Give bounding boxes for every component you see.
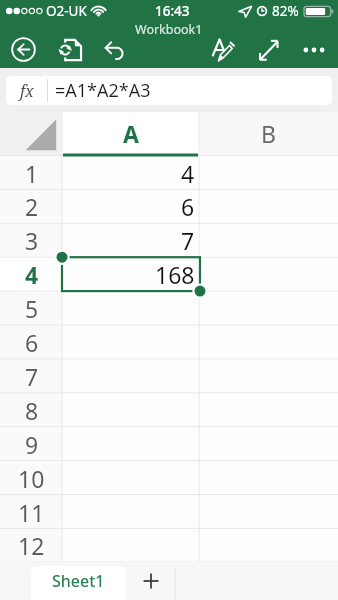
button[interactable]: More options: [290, 31, 338, 68]
staticText: 5: [25, 293, 39, 324]
staticText: 10: [18, 463, 45, 494]
button[interactable]: Sheet1: [31, 566, 126, 600]
staticText: Sheet1: [52, 570, 105, 592]
staticText: =A1*A2*A3: [55, 78, 151, 103]
staticText: 7: [181, 225, 195, 256]
button[interactable]: Undo: [93, 31, 137, 68]
staticText: 11: [18, 497, 45, 528]
staticText: B: [261, 118, 276, 149]
button[interactable]: Format text: [198, 31, 244, 68]
staticText: 8: [25, 395, 39, 426]
staticText: Workbook1: [135, 21, 203, 38]
staticText: 16:43: [155, 2, 190, 20]
button[interactable]: Expand: [244, 31, 290, 68]
button[interactable]: 11: [0, 495, 338, 529]
staticText: 4: [25, 259, 39, 290]
button[interactable]: 4: [0, 257, 338, 291]
button[interactable]: Save: [47, 31, 93, 68]
staticText: 12: [18, 530, 45, 561]
button[interactable]: 5: [0, 291, 338, 325]
staticText: A: [123, 118, 139, 149]
button[interactable]: 7: [0, 359, 338, 393]
staticText: O2-UK: [46, 2, 87, 20]
staticText: 82%: [272, 2, 299, 20]
button[interactable]: 3: [0, 223, 338, 257]
staticText: 9: [25, 429, 39, 460]
staticText: 6: [25, 327, 39, 358]
button[interactable]: 9: [0, 427, 338, 461]
staticText: 2: [25, 191, 39, 222]
staticText: 1: [25, 158, 39, 189]
staticText: 168: [155, 259, 195, 290]
button[interactable]: Add sheet: [126, 566, 175, 600]
staticText: fx: [20, 80, 34, 102]
staticText: 4: [181, 158, 195, 189]
button[interactable]: 12: [0, 528, 338, 562]
button[interactable]: Back: [0, 31, 47, 68]
button[interactable]: 8: [0, 393, 338, 427]
staticText: 7: [25, 361, 39, 392]
button[interactable]: 1: [0, 156, 338, 190]
staticText: 3: [25, 225, 39, 256]
button[interactable]: 10: [0, 461, 338, 495]
button[interactable]: B: [199, 112, 338, 155]
button[interactable]: fx: [6, 76, 332, 105]
button[interactable]: A: [62, 112, 199, 155]
staticText: 6: [181, 191, 195, 222]
button[interactable]: 6: [0, 325, 338, 359]
button[interactable]: 2: [0, 189, 338, 223]
